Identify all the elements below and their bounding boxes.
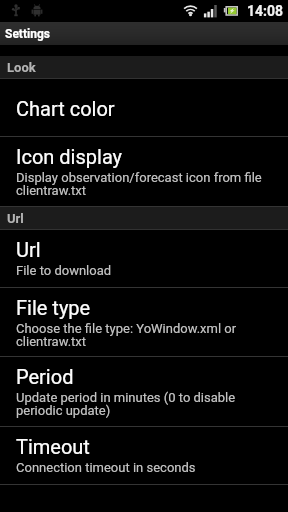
staticText: Update period in minutes (0 to disable p… [16, 390, 236, 418]
staticText: Icon display [16, 145, 123, 168]
staticText: File type [16, 296, 91, 319]
staticText: Period [16, 365, 74, 388]
staticText: Chart color [16, 97, 115, 120]
button[interactable]: Url [0, 230, 288, 288]
staticText: Connection timeout in seconds [16, 460, 196, 475]
button[interactable]: Chart color [0, 79, 288, 137]
staticText: Url [7, 211, 24, 226]
button[interactable]: File type [0, 288, 288, 357]
staticText: Url [16, 238, 41, 261]
staticText: Timeout [16, 435, 90, 458]
staticText: Choose the file type: YoWindow.xml or cl… [16, 321, 237, 349]
staticText: Look [7, 60, 36, 75]
staticText: 14:08 [247, 3, 284, 19]
staticText: Settings [5, 27, 50, 41]
staticText: Display observation/forecast icon from f… [16, 170, 262, 198]
button[interactable]: Icon display [0, 137, 288, 207]
button[interactable]: Settings [0, 22, 288, 45]
button[interactable]: Period [0, 357, 288, 427]
staticText: File to download [16, 263, 112, 278]
other: Status bar [0, 0, 288, 22]
button[interactable]: Timeout [0, 427, 288, 485]
